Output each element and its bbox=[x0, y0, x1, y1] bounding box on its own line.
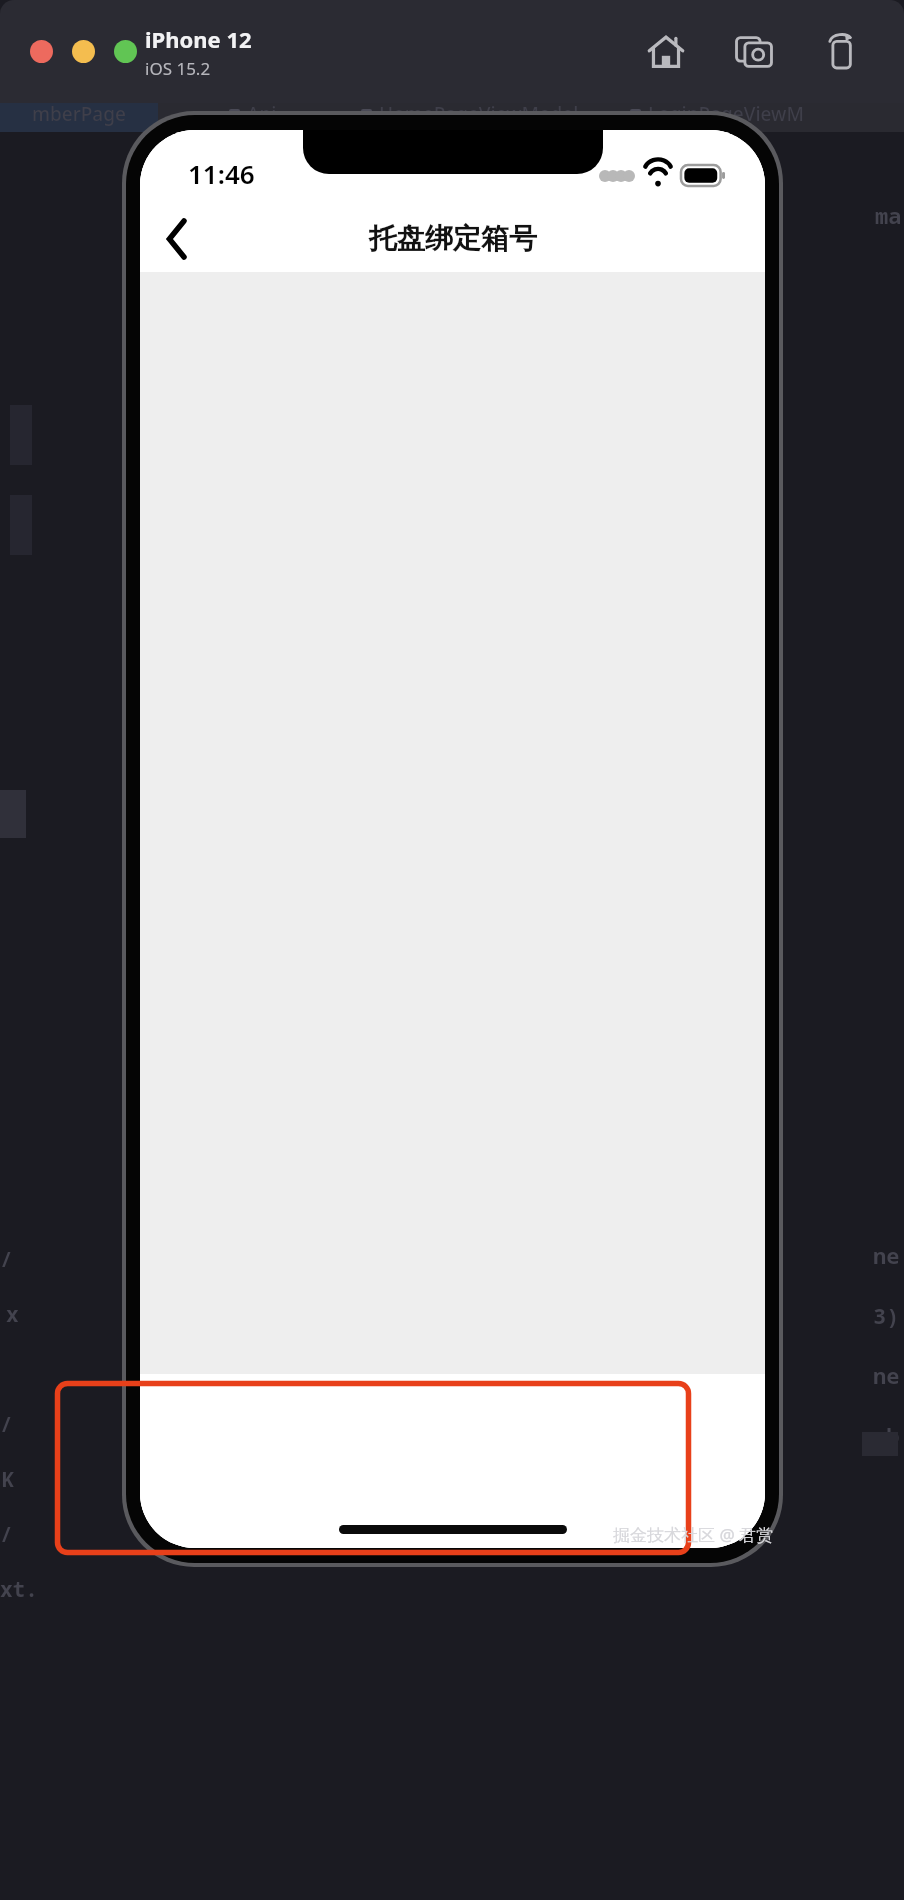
button[interactable]: Minimize bbox=[72, 40, 95, 63]
staticText: / bbox=[0, 1245, 13, 1274]
button[interactable]: Zoom bbox=[114, 40, 137, 63]
staticText: / bbox=[0, 1410, 13, 1439]
staticText: 托盘绑定箱号 bbox=[369, 221, 537, 256]
staticText: x bbox=[6, 1300, 19, 1329]
button[interactable]: Rotate bbox=[816, 26, 868, 78]
staticText: iPhone 12 bbox=[145, 24, 252, 54]
staticText: 11:46 bbox=[188, 156, 255, 191]
button[interactable]: Back bbox=[140, 205, 214, 272]
staticText: LoginPageViewM bbox=[648, 101, 804, 127]
button[interactable]: Home bbox=[640, 26, 692, 78]
staticText: 3) bbox=[873, 1300, 900, 1330]
staticText: mberPage bbox=[32, 101, 126, 127]
staticText: iOS 15.2 bbox=[145, 57, 211, 80]
staticText: HomePageViewModel bbox=[379, 101, 579, 127]
staticText: / bbox=[0, 1520, 13, 1549]
button[interactable]: Close bbox=[30, 40, 53, 63]
staticText: 掘金技术社区 @ 君赏 bbox=[613, 1523, 774, 1546]
button[interactable]: Screenshot bbox=[728, 26, 780, 78]
staticText: Api bbox=[247, 101, 277, 127]
staticText: ne bbox=[873, 1240, 900, 1270]
staticText: K bbox=[2, 1465, 15, 1494]
staticText: ne bbox=[873, 1360, 900, 1390]
staticText: ma bbox=[875, 200, 902, 230]
staticText: xt. bbox=[0, 1575, 38, 1604]
staticText: eb bbox=[873, 1420, 900, 1450]
